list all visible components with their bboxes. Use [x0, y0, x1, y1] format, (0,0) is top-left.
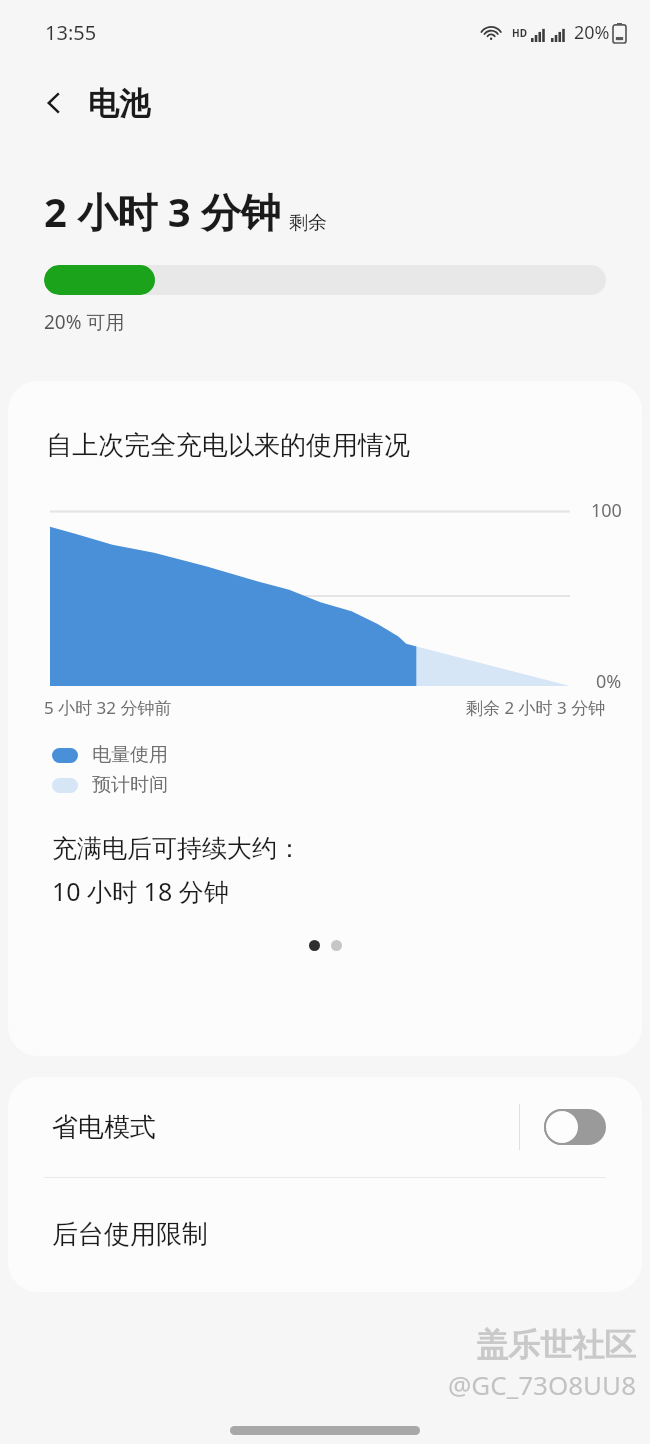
staticText: 5 小时 32 分钟前	[44, 696, 172, 719]
staticText: 电量使用	[92, 743, 168, 767]
staticText: 盖乐世社区	[476, 1325, 636, 1365]
staticText: 后台使用限制	[52, 1218, 208, 1251]
staticText: 预计时间	[92, 773, 168, 797]
staticText: 10 小时 18 分钟	[52, 874, 229, 908]
staticText: 剩余 2 小时 3 分钟	[466, 696, 606, 719]
staticText: 0%	[596, 669, 622, 694]
staticText: 充满电后可持续大约：	[52, 833, 302, 864]
button[interactable]: 后台使用限制	[8, 1178, 642, 1290]
staticText: 自上次完全充电以来的使用情况	[46, 429, 410, 462]
staticText: HD	[512, 26, 527, 40]
staticText: 剩余	[289, 211, 327, 235]
staticText: 20% 可用	[44, 309, 125, 335]
staticText: @GC_73O8UU8	[447, 1367, 636, 1402]
staticText: 省电模式	[52, 1111, 156, 1144]
button[interactable]: Back	[30, 79, 78, 127]
button[interactable]: 省电模式	[8, 1077, 642, 1177]
button[interactable]: 省电模式 toggle	[544, 1109, 606, 1145]
staticText: 电池	[88, 84, 150, 123]
staticText: 20%	[574, 20, 610, 45]
button[interactable]: 自上次完全充电以来的使用情况	[8, 381, 642, 1056]
staticText: 100	[591, 498, 622, 523]
staticText: 2 小时 3 分钟	[44, 184, 281, 239]
staticText: 13:55	[45, 19, 97, 46]
